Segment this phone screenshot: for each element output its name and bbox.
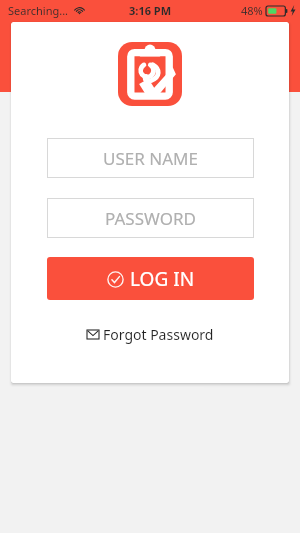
staticText: 48% <box>241 3 263 18</box>
button[interactable]: USER NAME <box>47 138 254 178</box>
button[interactable]: LOG IN <box>47 257 254 300</box>
button[interactable]: PASSWORD <box>47 198 254 238</box>
staticText: USER NAME <box>103 147 198 170</box>
staticText: Forgot Password <box>103 325 214 344</box>
staticText: LOG IN <box>130 266 195 292</box>
staticText: Searching... <box>8 3 69 18</box>
button[interactable]: Forgot Password <box>81 322 220 347</box>
staticText: PASSWORD <box>105 207 196 230</box>
staticText: 3:16 PM <box>129 3 172 18</box>
